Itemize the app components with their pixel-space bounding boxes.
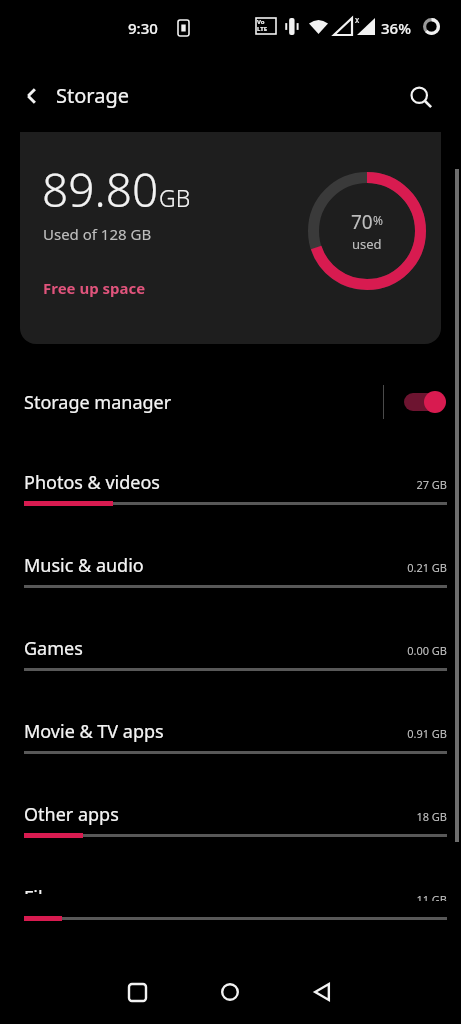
button[interactable]: Storage manager [0, 378, 461, 432]
staticText: used [352, 235, 382, 253]
button[interactable]: Photos & videos [0, 452, 461, 535]
button[interactable]: Storage manager toggle [400, 385, 448, 419]
staticText: x [355, 14, 360, 25]
button[interactable]: Movie & TV apps [0, 701, 461, 784]
button[interactable]: Back [301, 971, 343, 1013]
staticText: 0.00 GB [407, 643, 447, 658]
staticText: Storage [56, 82, 129, 109]
button[interactable]: Music & audio [0, 535, 461, 618]
staticText: 11 GB [416, 892, 447, 901]
button[interactable]: 89.80 [20, 132, 441, 344]
button[interactable]: Back [12, 76, 52, 116]
button[interactable]: Other apps [0, 784, 461, 867]
button[interactable]: Games [0, 618, 461, 701]
staticText: 36% [381, 18, 411, 38]
staticText: 0.21 GB [407, 560, 447, 575]
staticText: Photos & videos [24, 470, 160, 495]
staticText: LTE [257, 25, 268, 33]
staticText: 9:30 [128, 18, 158, 38]
button[interactable]: Free up space [35, 274, 154, 302]
staticText: 70 [351, 209, 373, 235]
button[interactable]: Home [209, 971, 251, 1013]
staticText: Games [24, 636, 83, 661]
button[interactable]: Search [400, 76, 442, 118]
staticText: GB [159, 182, 191, 213]
staticText: 0.91 GB [407, 726, 447, 741]
staticText: Used of 128 GB [43, 224, 152, 244]
staticText: Vo [257, 18, 265, 26]
staticText: % [373, 212, 383, 228]
button[interactable]: Recent apps [116, 971, 158, 1013]
staticText: Music & audio [24, 553, 144, 578]
staticText: Free up space [43, 278, 146, 298]
staticText: 89.80 [42, 158, 159, 221]
staticText: Storage manager [24, 390, 172, 415]
staticText: Files [24, 885, 62, 894]
staticText: 18 GB [416, 809, 447, 824]
staticText: 27 GB [416, 477, 447, 492]
staticText: Movie & TV apps [24, 719, 164, 744]
staticText: Other apps [24, 802, 119, 827]
